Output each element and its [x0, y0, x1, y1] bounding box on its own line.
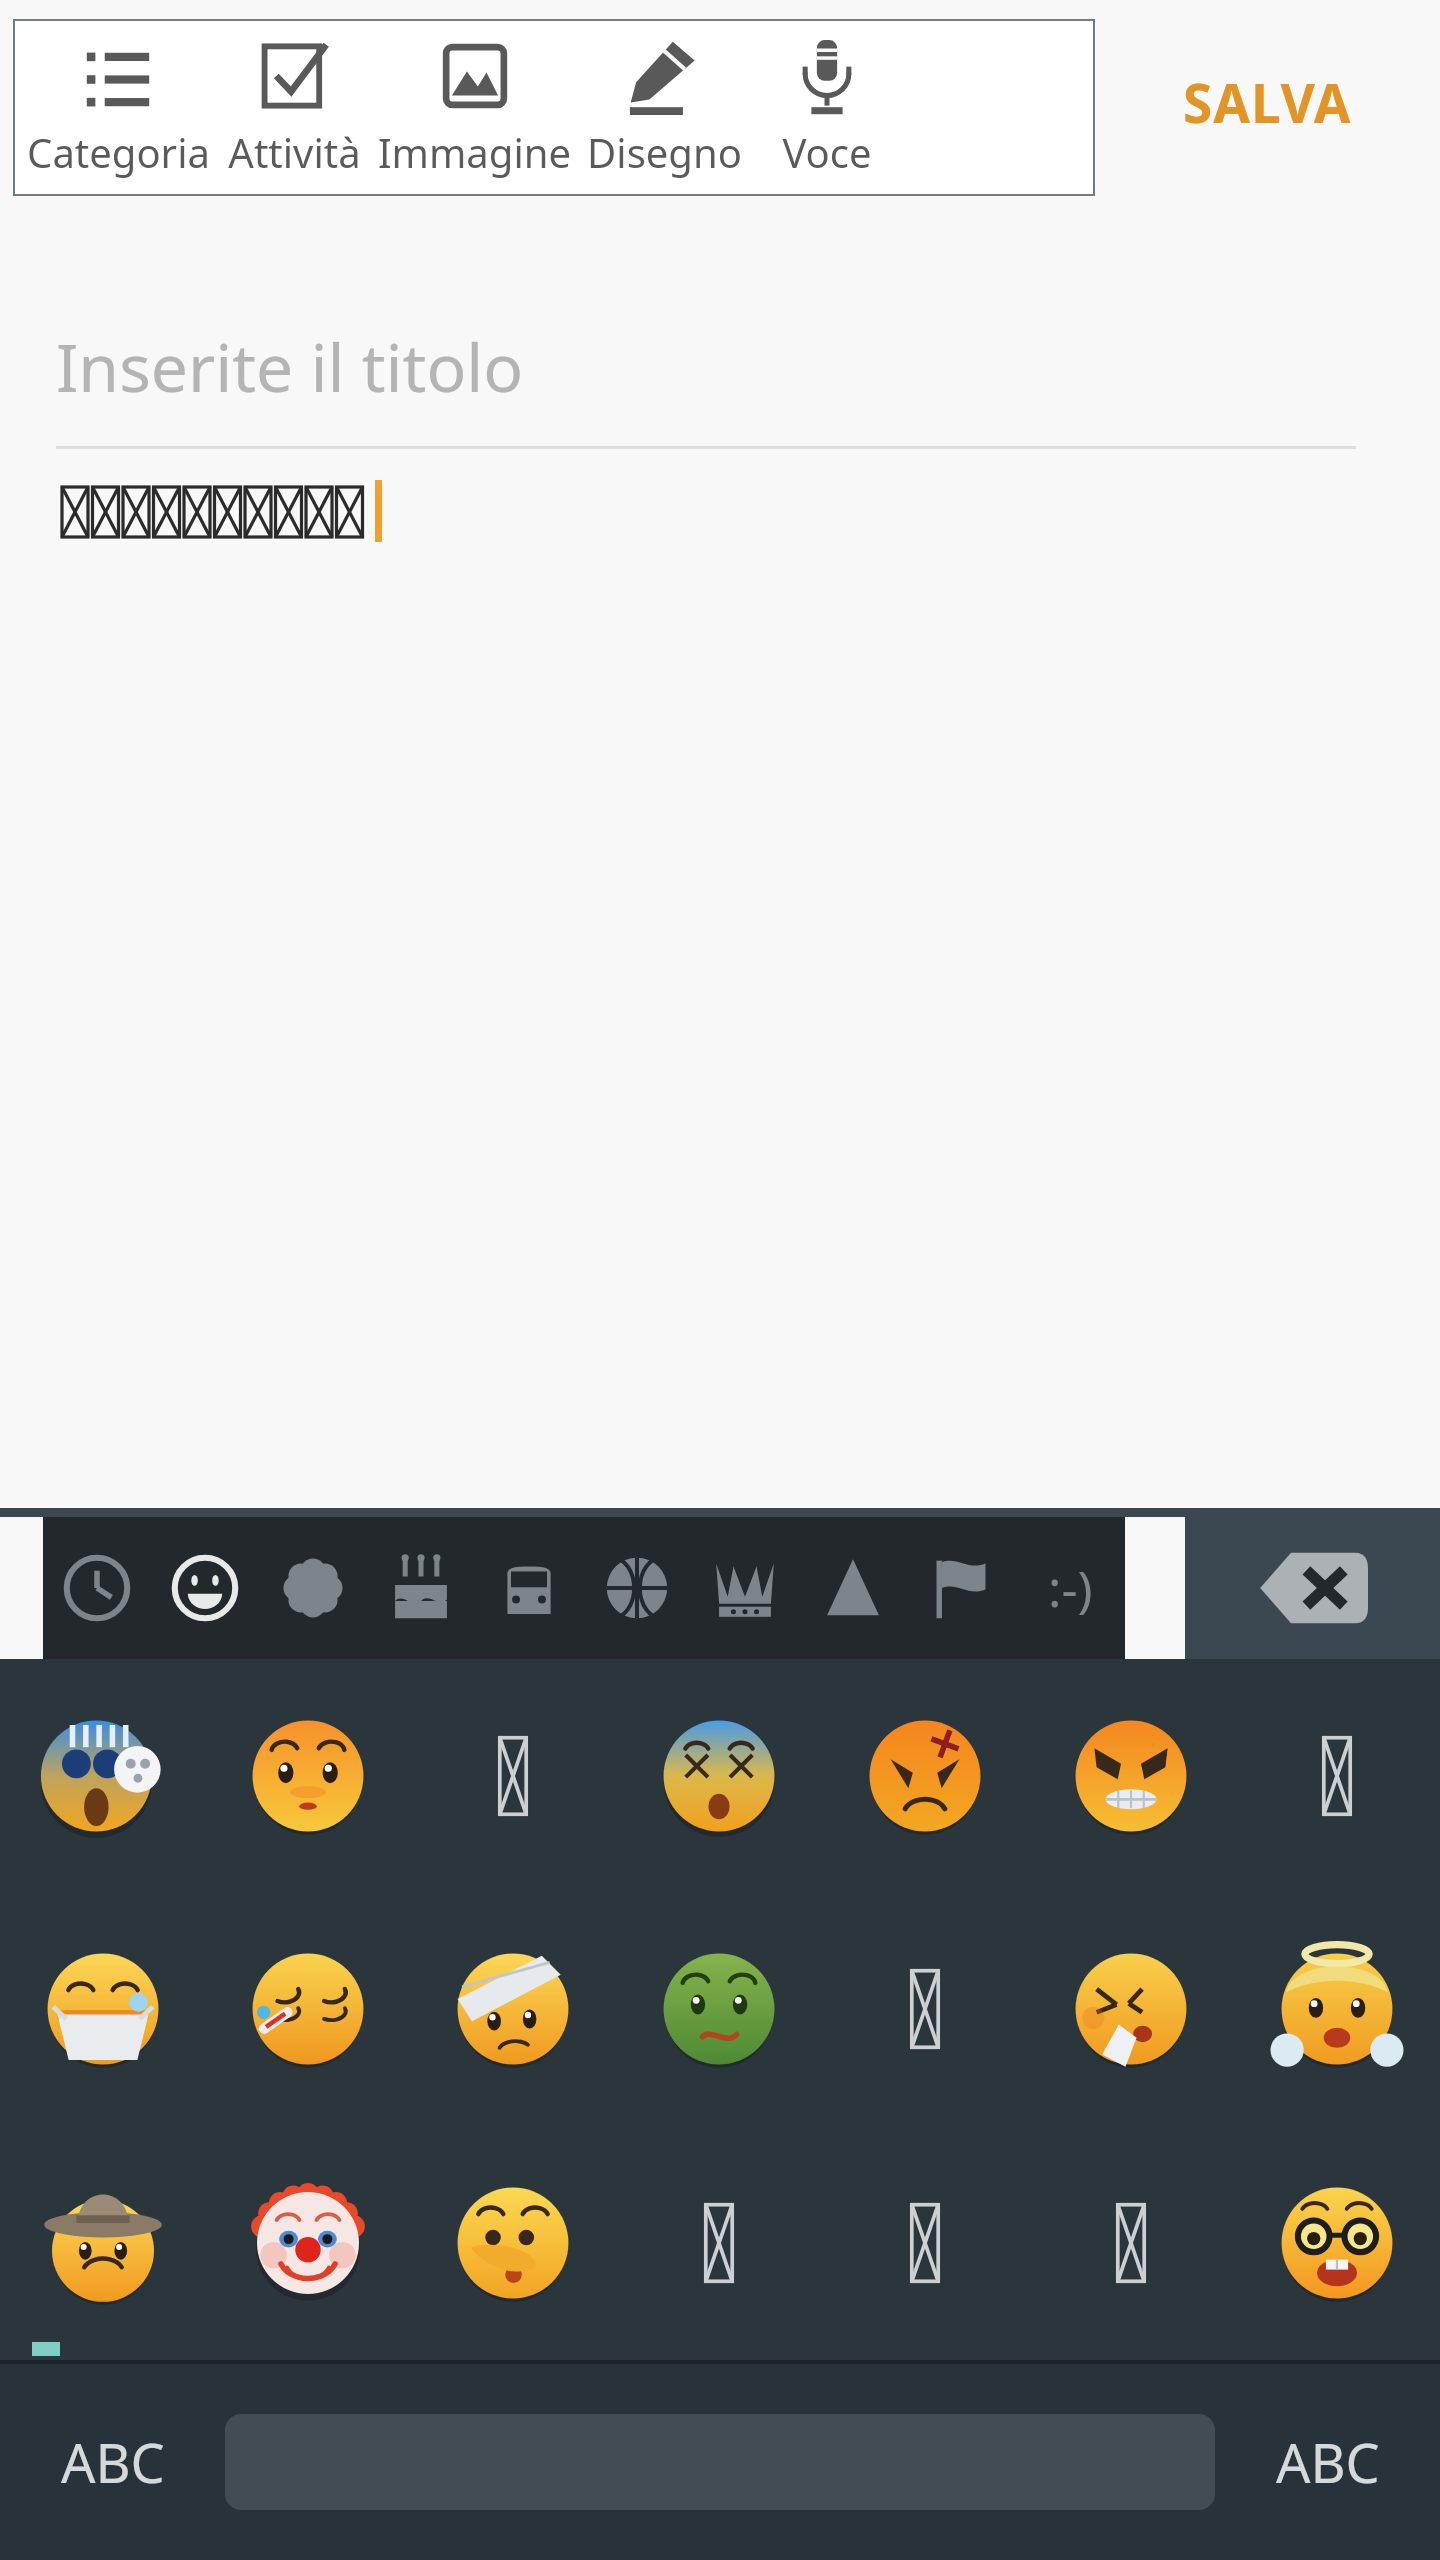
button[interactable]: Bandiere: [907, 1517, 1015, 1659]
button[interactable]: Oggetti: [691, 1517, 799, 1659]
button[interactable]: Emoji: [822, 1892, 1028, 2126]
button[interactable]: ABC: [0, 2364, 225, 2560]
button[interactable]: ABC: [1215, 2364, 1440, 2560]
staticText: Immagine: [378, 125, 571, 179]
button[interactable]: Emoji: [616, 2126, 822, 2360]
button[interactable]: Emoji: [822, 2126, 1028, 2360]
staticText: Inserite il titolo: [56, 321, 524, 411]
button[interactable]: Natura: [259, 1517, 367, 1659]
button[interactable]: Emoji: [0, 1892, 205, 2126]
button[interactable]: Viaggi: [475, 1517, 583, 1659]
button[interactable]: Attività: [583, 1517, 691, 1659]
button[interactable]: Disegno: [582, 20, 747, 195]
button[interactable]: Attività: [222, 20, 367, 195]
button[interactable]: Simboli: [799, 1517, 907, 1659]
staticText: ABC: [1276, 2425, 1380, 2499]
button[interactable]: Emoji: [822, 1659, 1028, 1892]
staticText: Categoria: [27, 125, 210, 179]
button[interactable]: Faccine: [151, 1517, 259, 1659]
button[interactable]: Emoji: [1028, 1892, 1234, 2126]
staticText: :-): [1048, 1554, 1093, 1622]
button[interactable]: Emoji: [0, 1659, 205, 1892]
button[interactable]: Emoji: [205, 1659, 410, 1892]
button[interactable]: Categoria: [14, 20, 222, 195]
button[interactable]: Emoji: [0, 2126, 205, 2360]
button[interactable]: Emoji: [410, 1892, 616, 2126]
button[interactable]: Emoji: [205, 1892, 410, 2126]
button[interactable]: Emoji: [1234, 1892, 1440, 2126]
staticText: Attività: [228, 125, 361, 179]
button[interactable]: Emoji: [205, 2126, 410, 2360]
staticText: SALVA: [1183, 66, 1352, 138]
button[interactable]: Emoji: [616, 1892, 822, 2126]
button[interactable]: Emoji: [410, 2126, 616, 2360]
button[interactable]: Cibo: [367, 1517, 475, 1659]
button[interactable]: Emoji: [616, 1659, 822, 1892]
button[interactable]: Recenti: [43, 1517, 151, 1659]
button[interactable]: Emoji: [1234, 1659, 1440, 1892]
button[interactable]: Voce: [747, 20, 907, 195]
button[interactable]: Emoji: [410, 1659, 616, 1892]
button[interactable]: Emoji: [1028, 1659, 1234, 1892]
button[interactable]: Immagine: [367, 20, 582, 195]
staticText: ABC: [61, 2425, 165, 2499]
button[interactable]: Emoji: [1234, 2126, 1440, 2360]
button[interactable]: Inserite il titolo: [0, 203, 1440, 1508]
button[interactable]: SALVA: [1094, 0, 1440, 203]
button[interactable]: Emoji: [1028, 2126, 1234, 2360]
staticText: Disegno: [587, 125, 742, 179]
button[interactable]: :-): [1015, 1517, 1125, 1659]
button[interactable]: Backspace: [1185, 1517, 1440, 1659]
staticText: Voce: [782, 125, 872, 179]
